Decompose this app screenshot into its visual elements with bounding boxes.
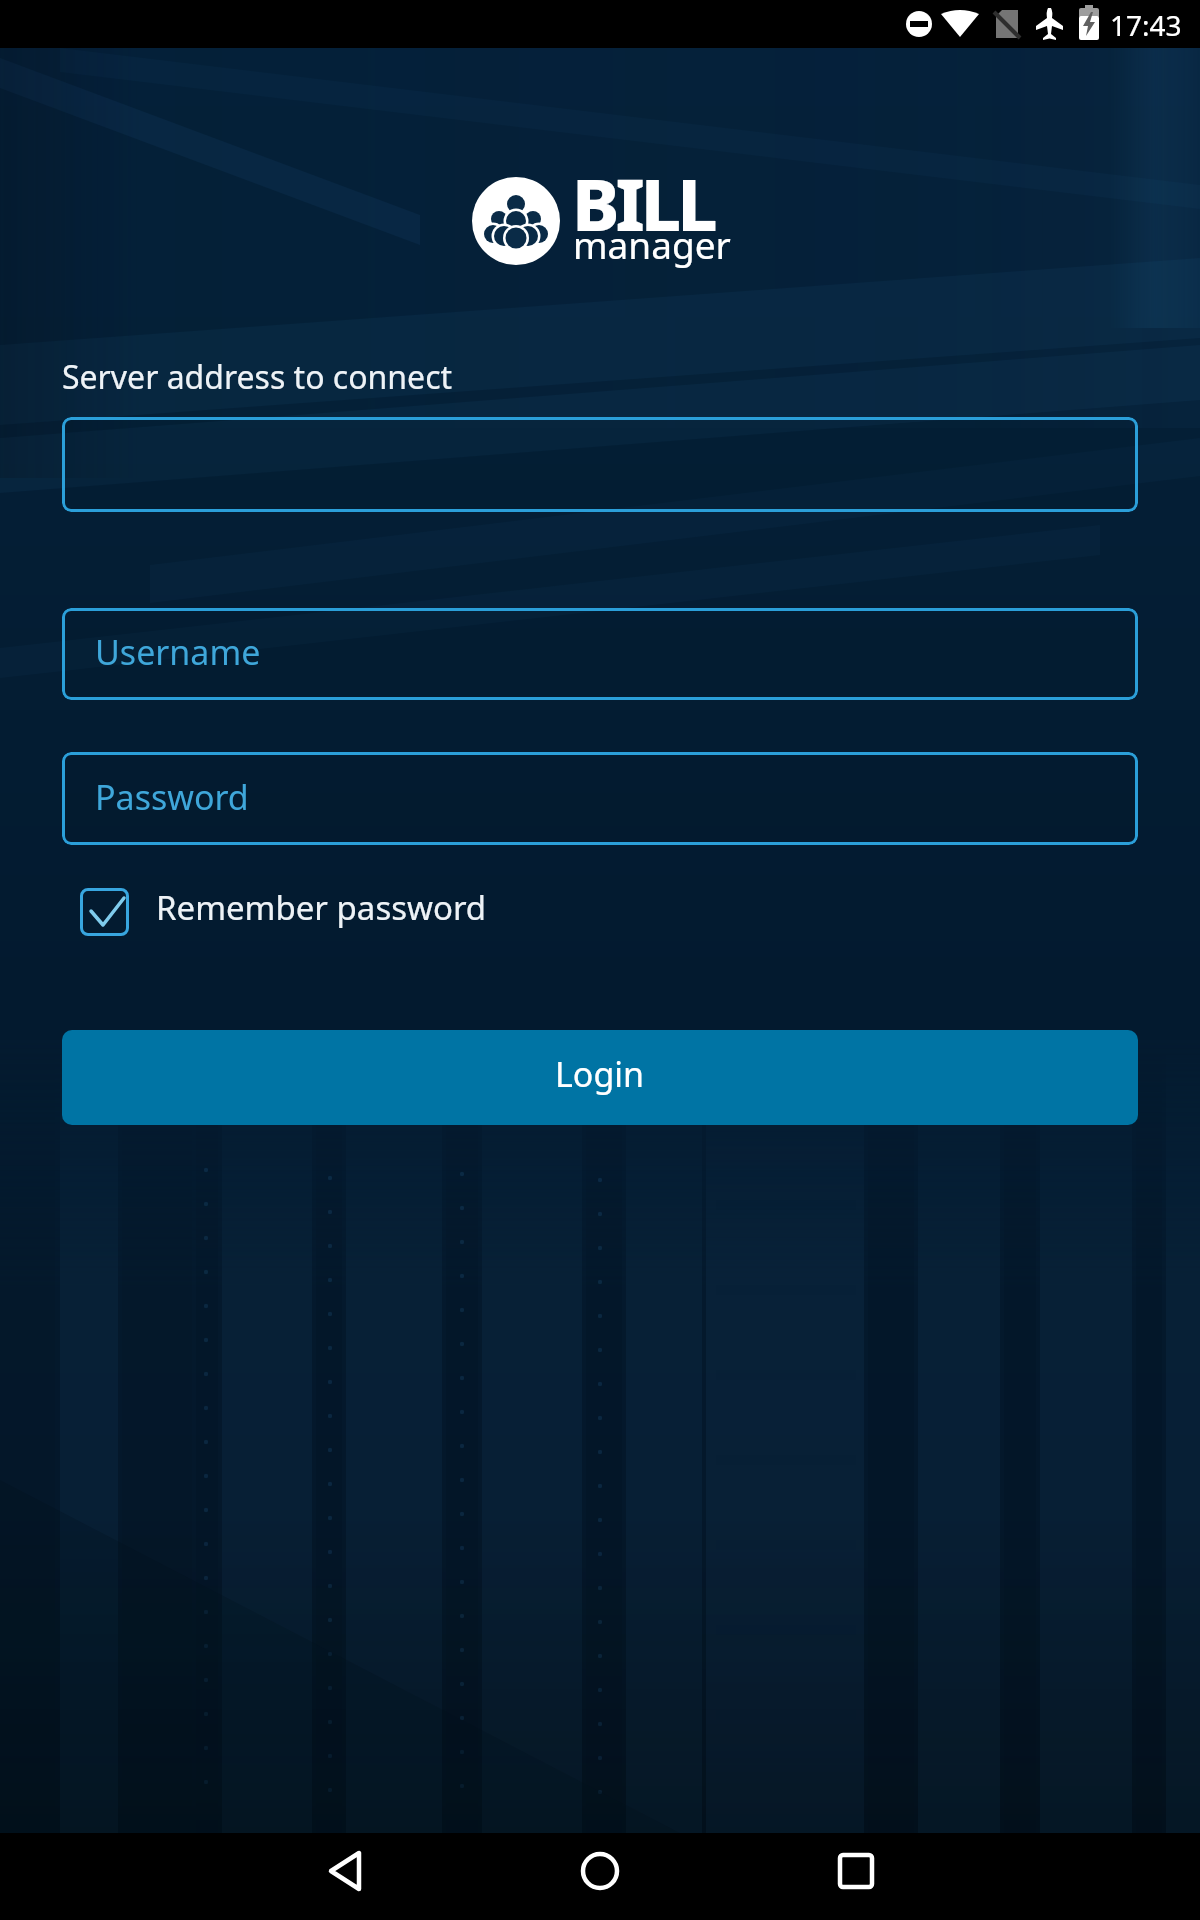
staticText: Server address to connect	[62, 355, 453, 399]
staticText: Remember password	[156, 885, 487, 930]
staticText: manager	[573, 219, 731, 269]
staticText: 17:43	[1110, 6, 1182, 44]
staticText: Username	[95, 629, 261, 675]
staticText: Password	[95, 774, 249, 820]
staticText: Login	[555, 1051, 645, 1097]
staticText: BILL	[572, 155, 714, 252]
